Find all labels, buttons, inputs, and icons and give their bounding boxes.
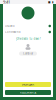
staticText: ■ ▮	[48, 0, 53, 3]
staticText: REGISTRARSE	[20, 91, 36, 94]
button[interactable]: INGRESAR	[5, 82, 51, 87]
staticText: INGRESAR	[21, 83, 34, 86]
staticText: Usuario	[5, 24, 15, 28]
staticText: Contraseña	[5, 30, 20, 34]
staticText: ¿Olvidaste tu clave?	[15, 37, 40, 40]
button[interactable]: REGISTRARSE	[5, 90, 51, 95]
staticText: 9:41	[3, 0, 10, 5]
staticText: Cambiar	[23, 52, 33, 55]
